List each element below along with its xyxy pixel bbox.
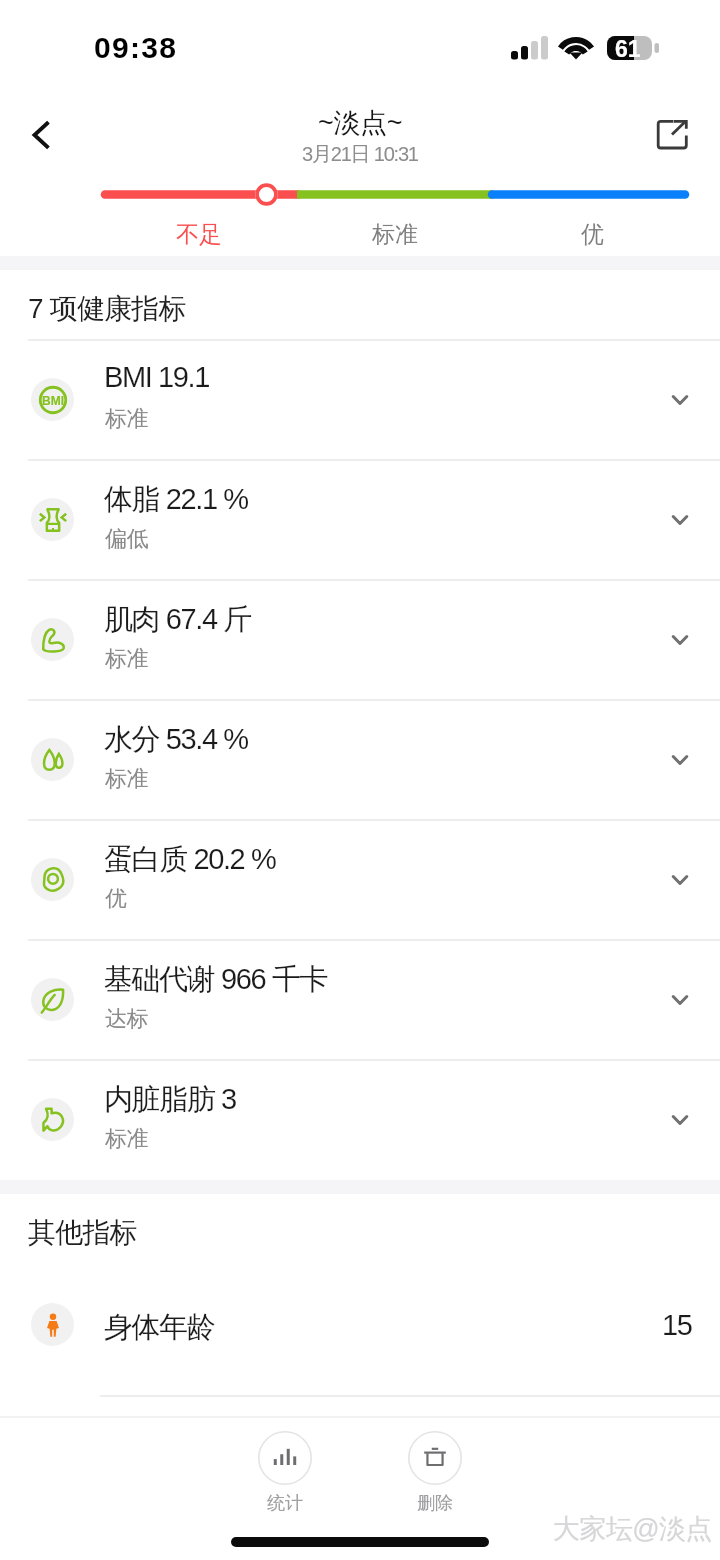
- button[interactable]: 身体年龄: [0, 1265, 720, 1385]
- staticText: 标准: [105, 765, 148, 793]
- staticText: 标准: [372, 220, 418, 249]
- staticText: 不足: [176, 220, 222, 249]
- staticText: 标准: [105, 405, 148, 433]
- staticText: 内脏脂肪 3: [104, 1081, 236, 1118]
- staticText: 15: [662, 1309, 692, 1341]
- button[interactable]: Share: [650, 113, 696, 159]
- staticText: BMI: [42, 394, 64, 407]
- staticText: 3月21日 10:31: [302, 142, 418, 167]
- button[interactable]: BMI: [0, 339, 720, 459]
- button[interactable]: 蛋白质 20.2 %: [0, 819, 720, 939]
- staticText: 09:38: [94, 31, 178, 65]
- staticText: 删除: [417, 1492, 453, 1515]
- button[interactable]: 肌肉 67.4 斤: [0, 579, 720, 699]
- staticText: 肌肉 67.4 斤: [104, 601, 251, 638]
- staticText: 大家坛@淡点: [553, 1512, 712, 1546]
- button[interactable]: 统计: [250, 1431, 320, 1515]
- staticText: 统计: [267, 1492, 303, 1515]
- staticText: 基础代谢 966 千卡: [104, 961, 328, 998]
- staticText: 61: [615, 36, 641, 62]
- staticText: BMI 19.1: [104, 361, 209, 393]
- staticText: 优: [581, 220, 604, 249]
- button[interactable]: 内脏脂肪 3: [0, 1059, 720, 1179]
- staticText: 体脂 22.1 %: [104, 481, 248, 518]
- staticText: 其他指标: [28, 1215, 137, 1250]
- button[interactable]: 水分 53.4 %: [0, 699, 720, 819]
- staticText: 7 项健康指标: [28, 291, 186, 326]
- staticText: 蛋白质 20.2 %: [104, 841, 276, 878]
- button[interactable]: Back: [12, 108, 66, 162]
- button[interactable]: 基础代谢 966 千卡: [0, 939, 720, 1059]
- staticText: 水分 53.4 %: [104, 721, 248, 758]
- button[interactable]: 体脂 22.1 %: [0, 459, 720, 579]
- staticText: 优: [105, 885, 127, 913]
- button[interactable]: 删除: [400, 1431, 470, 1515]
- staticText: 达标: [105, 1005, 148, 1033]
- staticText: 标准: [105, 645, 148, 673]
- staticText: ~淡点~: [318, 106, 403, 140]
- staticText: 身体年龄: [104, 1309, 215, 1346]
- staticText: 标准: [105, 1125, 148, 1153]
- staticText: 偏低: [105, 525, 148, 553]
